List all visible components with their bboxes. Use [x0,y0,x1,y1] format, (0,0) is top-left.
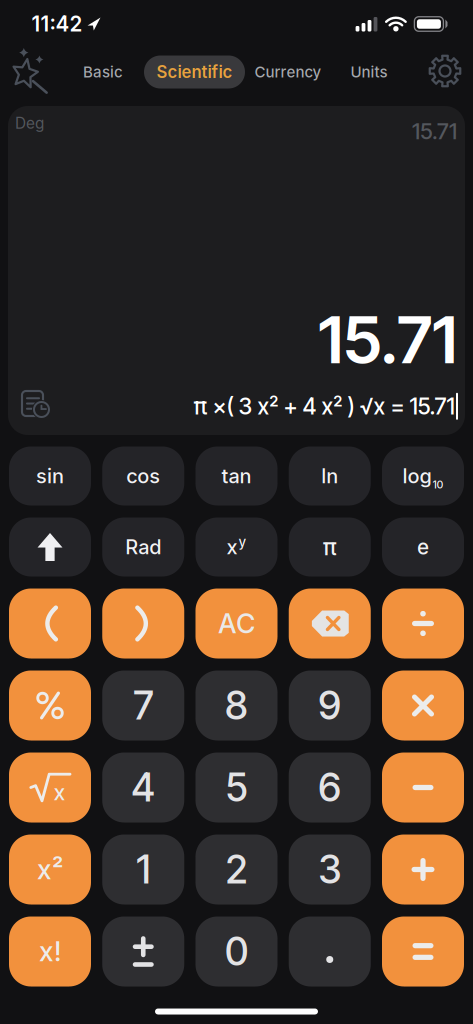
button[interactable]: log [382,446,464,505]
button[interactable]: 4 [102,752,184,822]
staticText: 4 [131,764,155,811]
button[interactable]: Shift [9,517,91,576]
staticText: e [417,534,429,559]
button[interactable]: Multiply [382,670,464,740]
button[interactable]: sin [9,446,91,505]
button[interactable]: Open parenthesis [9,588,91,658]
staticText: 7 [133,682,153,729]
staticText: cos [126,464,160,488]
button[interactable]: cos [102,446,184,505]
staticText: Units [350,63,387,81]
button[interactable]: 5 [195,752,277,822]
staticText: x [226,535,237,559]
button[interactable]: Settings [428,54,462,88]
button[interactable]: Rad [102,517,184,576]
button[interactable]: Basic [83,63,123,81]
staticText: 2 [225,846,247,893]
staticText: x² [37,853,63,886]
button[interactable]: x [195,517,277,576]
staticText: 15.71 [412,118,457,145]
button[interactable]: 0 [195,916,277,986]
staticText: Rad [125,535,161,559]
button[interactable]: Percent [9,670,91,740]
button[interactable]: 3 [289,834,371,904]
staticText: sin [36,464,64,488]
button[interactable]: Plus minus [102,916,184,986]
button[interactable]: Add [382,834,464,904]
button[interactable]: 8 [195,670,277,740]
staticText: 3 [318,846,341,893]
button[interactable]: Scientific [144,55,245,88]
button[interactable]: 7 [102,670,184,740]
button[interactable]: Decimal point [289,916,371,986]
staticText: 1 [136,846,150,893]
button[interactable]: Square root [9,752,91,822]
button[interactable]: Currency [254,63,321,81]
staticText: Currency [254,63,321,81]
button[interactable]: 1 [102,834,184,904]
staticText: 15.71 [318,300,457,379]
button[interactable]: Subtract [382,752,464,822]
button[interactable]: 6 [289,752,371,822]
button[interactable]: History [21,390,51,420]
staticText: 11:42 [31,11,82,36]
staticText: 9 [318,682,341,729]
staticText: x! [39,935,61,968]
staticText: Scientific [156,62,232,82]
button[interactable]: x² [9,834,91,904]
button[interactable]: 2 [195,834,277,904]
button[interactable]: Themes [9,48,49,94]
staticText: π [323,533,337,561]
button[interactable]: Backspace [289,588,371,658]
staticText: x [53,780,65,805]
staticText: tan [221,464,251,488]
button[interactable]: tan [195,446,277,505]
button[interactable]: Equals [382,916,464,986]
staticText: Basic [83,63,123,81]
button[interactable]: Units [350,63,387,81]
staticText: 0 [225,928,248,975]
button[interactable]: Divide [382,588,464,658]
staticText: 10 [432,478,443,491]
button[interactable]: ln [289,446,371,505]
staticText: y [238,534,246,550]
staticText: 8 [225,682,248,729]
staticText: π ×( 3 x² + 4 x² ) √x = 15.71 [193,393,454,420]
button[interactable]: e [382,517,464,576]
button[interactable]: x! [9,916,91,986]
button[interactable]: 9 [289,670,371,740]
staticText: Deg [15,114,44,133]
staticText: AC [218,607,255,640]
button[interactable]: π [289,517,371,576]
staticText: 5 [225,764,247,811]
staticText: 6 [318,764,341,811]
staticText: log [402,464,431,488]
button[interactable]: AC [195,588,277,658]
button[interactable]: Close parenthesis [102,588,184,658]
staticText: ln [321,464,338,488]
